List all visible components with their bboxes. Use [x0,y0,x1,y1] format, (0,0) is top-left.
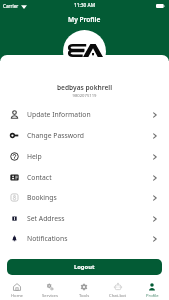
staticText: Set Address [27,214,65,223]
staticText: 11:30 AM [74,2,96,9]
staticText: Contact [27,173,52,182]
staticText: Bookings [27,193,57,202]
button[interactable]: Contact [0,167,169,188]
button[interactable]: Profile [135,280,169,300]
staticText: Carrier [3,3,19,9]
staticText: 9802075119 [0,93,169,99]
button[interactable]: Tools [67,280,101,300]
staticText: Notifications [27,234,68,243]
button[interactable]: Logout [7,259,162,275]
staticText: Services [42,293,58,299]
staticText: bedbyas pokhrell [0,83,169,92]
staticText: Profile [146,293,159,299]
button[interactable]: Chat-bot [101,280,135,300]
staticText: Update Information [27,110,91,119]
staticText: My Profile [68,15,101,24]
staticText: Chat-bot [109,293,127,299]
button[interactable]: Bookings [0,187,169,208]
staticText: Home [11,293,23,299]
button[interactable]: Change Password [0,125,169,146]
button[interactable]: Help [0,146,169,167]
button[interactable]: Update Information [0,104,169,125]
button[interactable]: Notifications [0,228,169,249]
staticText: Tools [79,293,90,299]
button[interactable]: Services [33,280,67,300]
staticText: Change Password [27,131,85,140]
staticText: Logout [74,263,95,271]
staticText: Help [27,152,42,161]
button[interactable]: Set Address [0,208,169,229]
button[interactable]: Home [0,280,33,300]
